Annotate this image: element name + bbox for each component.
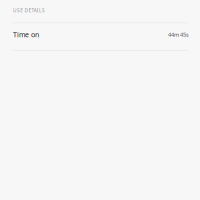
staticText: 44m 45s (168, 31, 189, 38)
staticText: Time on (13, 30, 39, 39)
staticText: USE DETAILS (13, 7, 45, 13)
button[interactable]: Time on (0, 23, 200, 50)
